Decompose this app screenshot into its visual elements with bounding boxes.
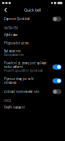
button[interactable]: Otevřít nastavení [0, 103, 65, 111]
staticText: Zapnout Quick ball [4, 17, 30, 21]
button[interactable]: Zapnout Quick ball [0, 14, 65, 24]
staticText: Quick ball [24, 7, 41, 13]
staticText: Ikona asistenta [4, 53, 23, 57]
button[interactable]: Výběr akce [0, 31, 65, 39]
button[interactable]: Zobrazit na domovské obr. [0, 87, 65, 96]
staticText: obrazovce [4, 81, 17, 84]
staticText: Přizpůsobit gesta [4, 41, 28, 45]
staticText: Povolení ze strany jiné aplikace [4, 61, 47, 65]
staticText: Plynout drag po celé [4, 77, 34, 81]
staticText: Styl asistenta [4, 49, 20, 53]
button[interactable]: Back [3, 6, 9, 14]
staticText: nebo zařízení [4, 65, 23, 69]
staticText: NASTAVENÍ [4, 26, 18, 30]
staticText: Zobrazit na domovské obr. [4, 90, 40, 93]
button[interactable]: Přizpůsobit gesta [0, 39, 65, 47]
button[interactable]: Povolení ze strany jiné aplikace [0, 59, 65, 75]
button[interactable]: Styl asistenta [0, 47, 65, 59]
staticText: Otevřít nastavení [4, 106, 25, 109]
staticText: Povolit spouštění Quick ball [4, 69, 43, 72]
staticText: Výběr akce [4, 33, 18, 37]
button[interactable]: Plynout drag po celé [0, 75, 65, 87]
staticText: DALŠÍ [4, 99, 11, 102]
